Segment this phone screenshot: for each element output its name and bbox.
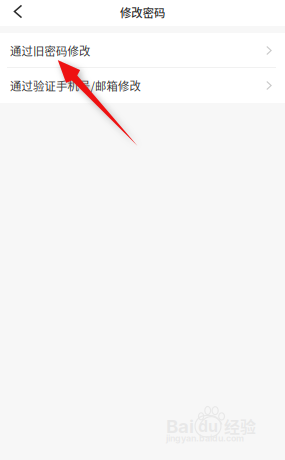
staticText: 经验 bbox=[224, 414, 256, 438]
staticText: 通过旧密码修改 bbox=[10, 42, 90, 59]
staticText: 通过验证手机号/邮箱修改 bbox=[10, 77, 140, 94]
staticText: 修改密码 bbox=[120, 4, 165, 20]
staticText: du bbox=[198, 416, 218, 436]
staticText: jingyan.baidu.com bbox=[166, 433, 244, 444]
button[interactable]: 通过验证手机号/邮箱修改 bbox=[0, 68, 285, 103]
staticText: Bai bbox=[166, 415, 194, 438]
button[interactable]: 通过旧密码修改 bbox=[0, 33, 285, 68]
button[interactable]: Back bbox=[0, 0, 36, 26]
